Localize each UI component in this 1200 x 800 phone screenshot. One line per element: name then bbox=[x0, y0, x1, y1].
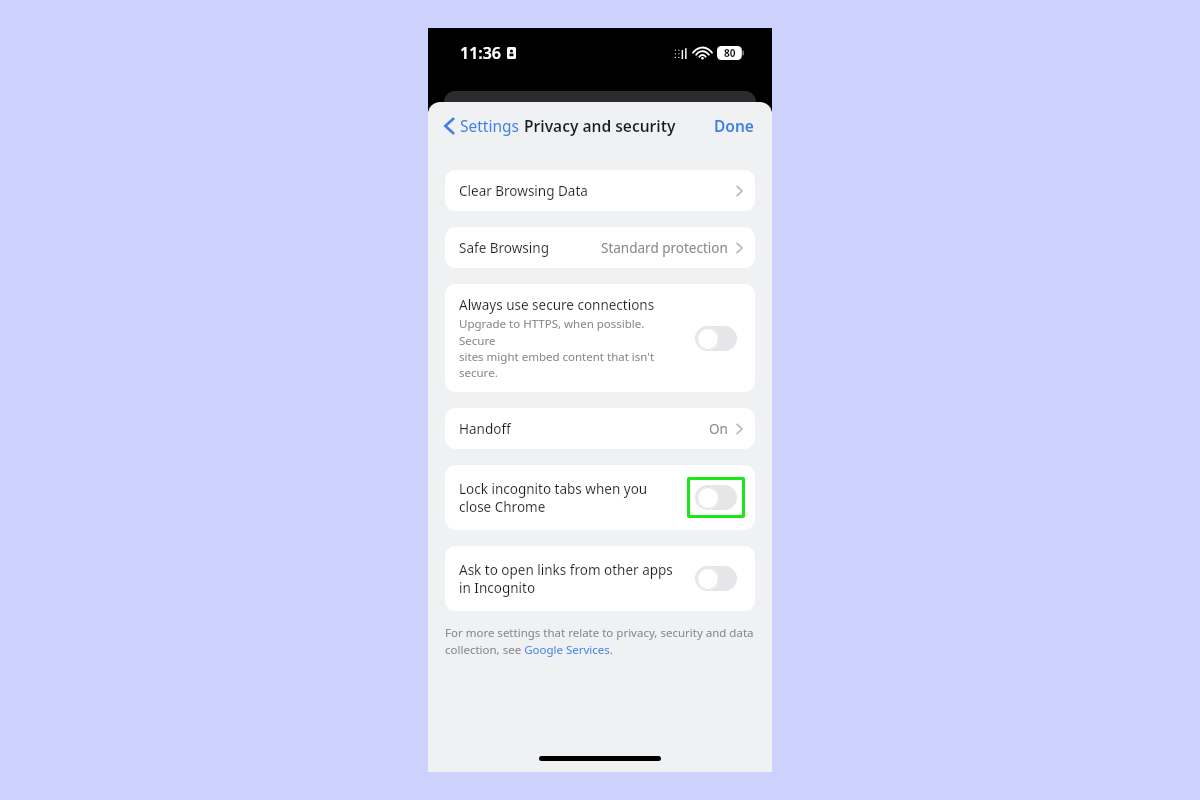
staticText: For more settings that relate to privacy… bbox=[445, 625, 754, 658]
staticText: Safe Browsing bbox=[459, 239, 549, 257]
button[interactable]: Toggle setting bbox=[695, 566, 737, 591]
staticText: 80 bbox=[724, 46, 736, 60]
button[interactable]: Toggle setting bbox=[695, 326, 737, 351]
staticText: Handoff bbox=[459, 420, 511, 438]
button[interactable]: Safe Browsing bbox=[445, 227, 755, 268]
button[interactable]: Always use secure connections bbox=[445, 284, 755, 392]
staticText: Settings bbox=[460, 115, 519, 136]
staticText: Done bbox=[714, 115, 754, 136]
button[interactable]: Handoff bbox=[445, 408, 755, 449]
staticText: 11:36 bbox=[460, 42, 502, 64]
staticText: Upgrade to HTTPS, when possible. Secure … bbox=[459, 316, 677, 380]
staticText: Lock incognito tabs when you close Chrom… bbox=[459, 480, 648, 516]
staticText: Standard protection bbox=[601, 239, 728, 257]
staticText: Clear Browsing Data bbox=[459, 182, 588, 200]
staticText: Always use secure connections bbox=[459, 296, 655, 314]
staticText: Ask to open links from other apps in Inc… bbox=[459, 561, 673, 597]
button[interactable]: Toggle setting bbox=[695, 485, 737, 510]
button[interactable]: Settings bbox=[440, 111, 523, 140]
button[interactable]: Ask to open links from other apps in Inc… bbox=[445, 546, 755, 611]
staticText: On bbox=[709, 420, 728, 438]
button[interactable]: Clear Browsing Data bbox=[445, 170, 755, 211]
button[interactable]: Lock incognito tabs when you close Chrom… bbox=[445, 465, 755, 530]
button[interactable]: Done bbox=[710, 111, 758, 140]
staticText: Privacy and security bbox=[524, 115, 676, 136]
